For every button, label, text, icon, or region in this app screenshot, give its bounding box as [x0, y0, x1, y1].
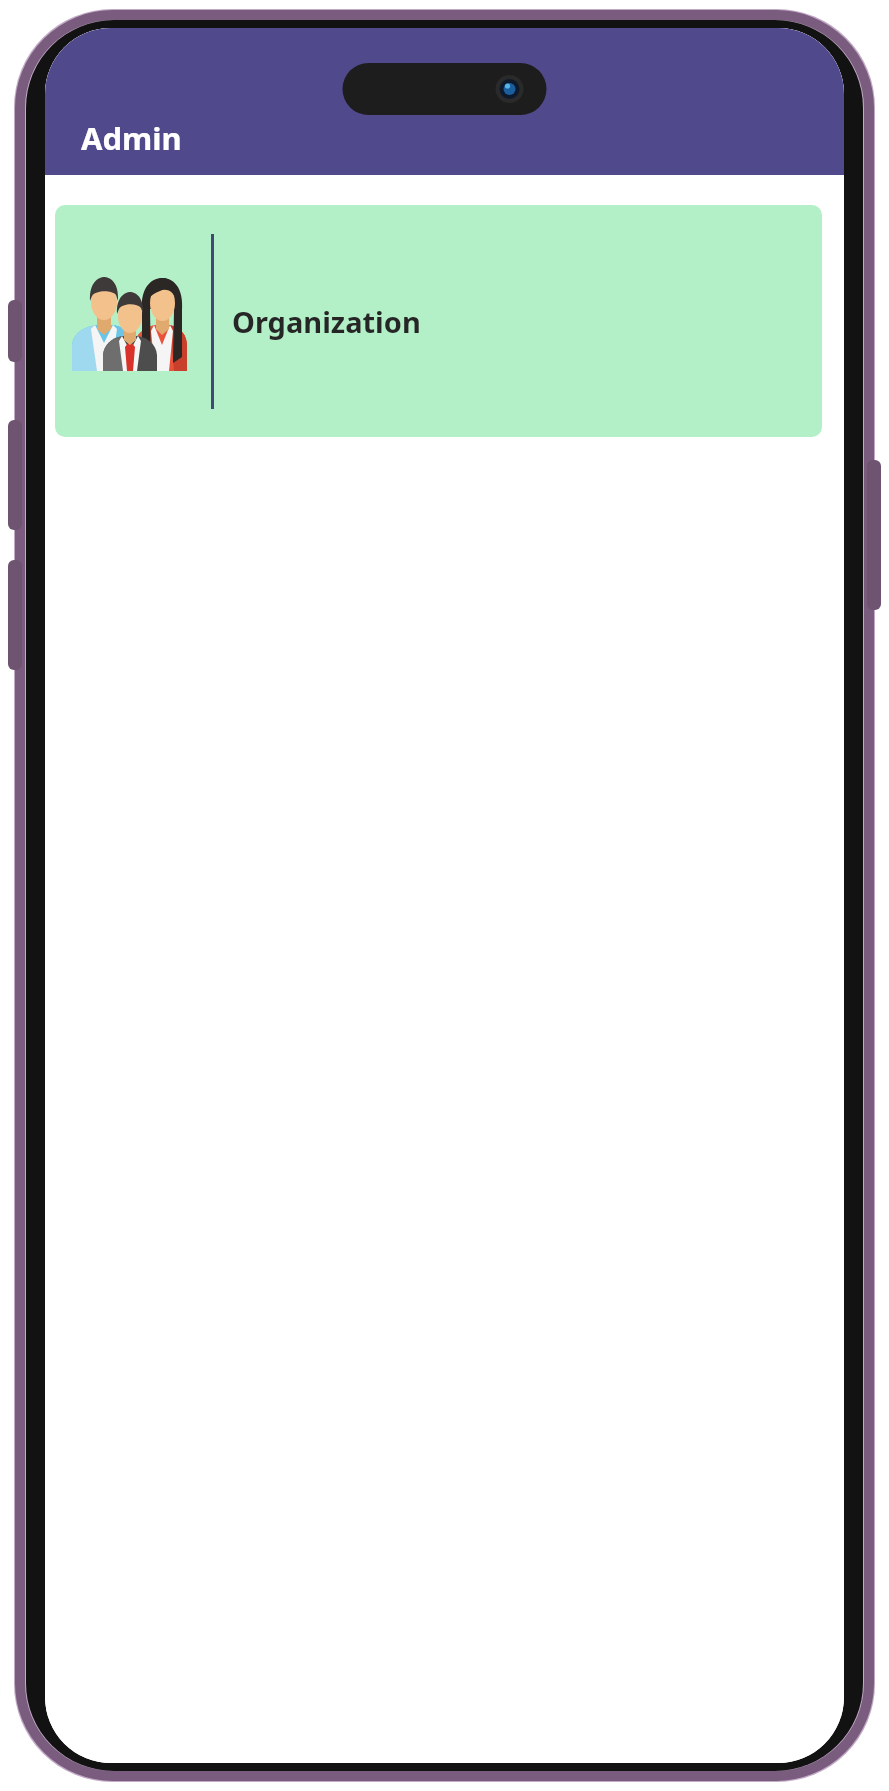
staticText: Organization	[232, 302, 421, 341]
staticText: Admin	[81, 117, 182, 159]
button[interactable]: Organization members	[55, 205, 822, 437]
other: Organization members	[70, 271, 188, 371]
